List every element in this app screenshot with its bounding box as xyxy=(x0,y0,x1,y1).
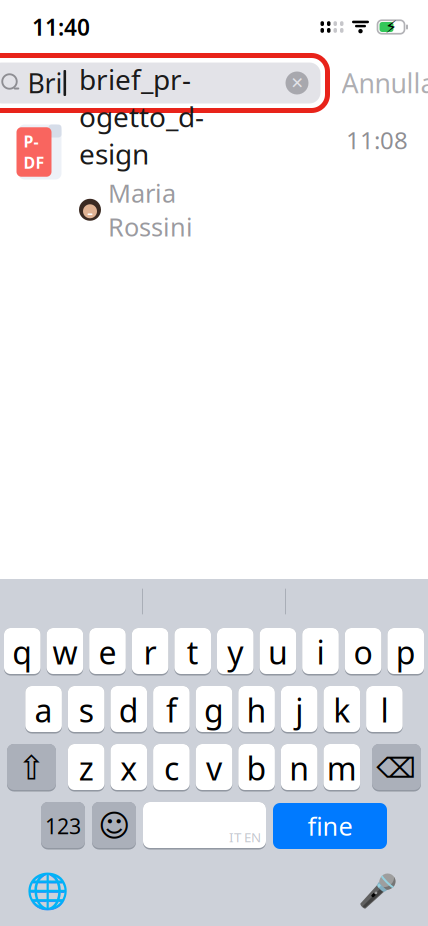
staticText: ⌫ xyxy=(376,752,416,784)
button[interactable]: l xyxy=(366,686,403,734)
staticText: w xyxy=(52,631,77,673)
button[interactable]: o xyxy=(345,628,381,676)
button[interactable]: Dictation xyxy=(348,863,408,919)
button[interactable]: q xyxy=(4,628,41,676)
staticText: h xyxy=(247,689,267,731)
button[interactable]: b xyxy=(238,744,275,792)
button[interactable]: i xyxy=(302,628,339,676)
button[interactable]: Annulla xyxy=(331,57,428,109)
staticText: brief_progetto_design xyxy=(79,61,204,172)
staticText: x xyxy=(120,747,137,789)
staticText: c xyxy=(164,747,179,789)
button[interactable]: 123 xyxy=(41,802,85,850)
staticText: l xyxy=(380,689,388,731)
staticText: 🌐 xyxy=(26,871,69,911)
staticText: IT EN xyxy=(229,828,261,846)
button[interactable]: z xyxy=(68,744,104,792)
staticText: a xyxy=(35,689,53,731)
button[interactable]: Space xyxy=(143,802,266,850)
staticText: s xyxy=(79,689,94,731)
staticText: i xyxy=(316,631,324,673)
button[interactable]: Bri xyxy=(0,55,327,110)
staticText: Maria Rossini xyxy=(108,176,193,243)
staticText: ✕ xyxy=(290,74,303,92)
button[interactable]: d xyxy=(110,686,147,734)
button[interactable]: fine xyxy=(273,802,387,850)
staticText: Bri xyxy=(27,65,62,101)
staticText: o xyxy=(354,631,373,673)
button[interactable]: h xyxy=(238,686,275,734)
button[interactable]: v xyxy=(196,744,232,792)
staticText: 11:08 xyxy=(346,124,408,156)
button[interactable]: Delete xyxy=(372,744,421,792)
button[interactable]: e xyxy=(89,628,126,676)
button[interactable]: Emoji xyxy=(92,802,136,850)
button[interactable]: k xyxy=(323,686,360,734)
button[interactable]: Shift xyxy=(7,744,56,792)
staticText: PDF xyxy=(23,131,44,173)
button[interactable]: PDF xyxy=(0,112,428,192)
staticText: b xyxy=(247,747,267,789)
button[interactable]: Change keyboard xyxy=(16,861,79,921)
staticText: t xyxy=(187,631,199,673)
staticText: fine xyxy=(307,809,352,843)
staticText: k xyxy=(333,689,350,731)
staticText: u xyxy=(268,631,288,673)
button[interactable]: y xyxy=(217,628,254,676)
staticText: q xyxy=(12,631,32,673)
button[interactable]: n xyxy=(281,744,317,792)
staticText: z xyxy=(79,747,94,789)
button[interactable]: w xyxy=(47,628,83,676)
staticText: Annulla xyxy=(341,65,428,101)
staticText: ☺ xyxy=(98,809,130,843)
staticText: p xyxy=(396,631,416,673)
staticText: 🎤 xyxy=(358,873,398,909)
button[interactable]: r xyxy=(132,628,168,676)
staticText: f xyxy=(166,689,177,731)
button[interactable]: a xyxy=(25,686,62,734)
staticText: r xyxy=(144,631,157,673)
button[interactable]: j xyxy=(281,686,317,734)
staticText: ⇧ xyxy=(17,749,45,787)
staticText: n xyxy=(289,747,309,789)
staticText: ⚡︎ xyxy=(385,17,397,37)
staticText: j xyxy=(295,689,303,731)
button[interactable]: f xyxy=(153,686,190,734)
button[interactable]: u xyxy=(260,628,296,676)
staticText: e xyxy=(98,631,116,673)
button[interactable]: p xyxy=(387,628,424,676)
button[interactable]: c xyxy=(153,744,190,792)
staticText: 11:40 xyxy=(32,12,90,42)
staticText: m xyxy=(327,747,357,789)
button[interactable]: s xyxy=(68,686,104,734)
staticText: d xyxy=(119,689,139,731)
button[interactable]: t xyxy=(174,628,211,676)
button[interactable]: x xyxy=(110,744,147,792)
button[interactable]: g xyxy=(196,686,232,734)
staticText: v xyxy=(206,747,222,789)
staticText: 123 xyxy=(45,812,81,840)
staticText: y xyxy=(227,631,243,673)
staticText: g xyxy=(204,689,224,731)
button[interactable]: m xyxy=(323,744,360,792)
